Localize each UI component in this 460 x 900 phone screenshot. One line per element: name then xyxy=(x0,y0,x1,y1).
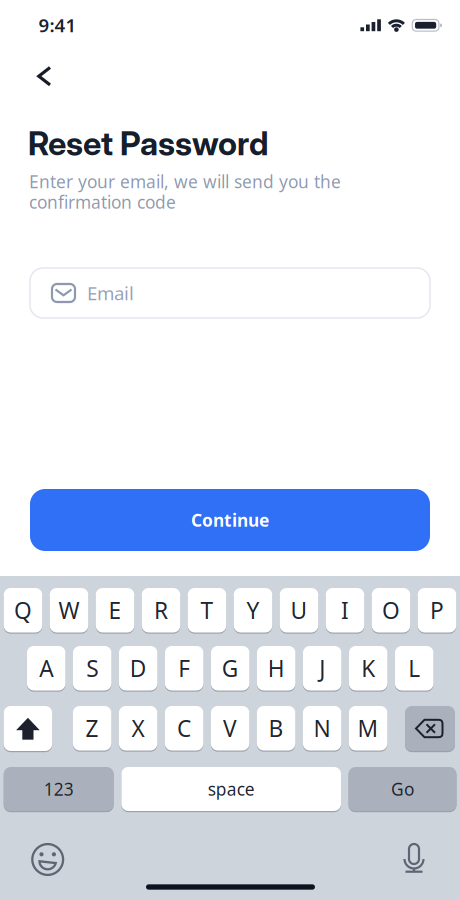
button[interactable]: X xyxy=(119,706,157,750)
staticText: W xyxy=(58,595,79,625)
staticText: T xyxy=(200,595,213,625)
staticText: B xyxy=(269,713,284,743)
button[interactable]: Y xyxy=(234,588,272,632)
staticText: Email xyxy=(87,281,134,305)
staticText: A xyxy=(39,653,53,683)
staticText: Y xyxy=(246,595,259,625)
staticText: D xyxy=(130,653,147,683)
button[interactable]: U xyxy=(280,588,318,632)
staticText: S xyxy=(86,653,98,683)
staticText: 123 xyxy=(44,777,74,800)
staticText: Enter your email, we will send you the c… xyxy=(29,170,341,213)
staticText: F xyxy=(178,653,190,683)
staticText: Go xyxy=(391,777,414,800)
staticText: H xyxy=(268,653,285,683)
button[interactable] xyxy=(29,64,61,90)
staticText: J xyxy=(319,653,325,683)
staticText: N xyxy=(314,713,331,743)
staticText: Reset Password xyxy=(28,123,269,163)
button[interactable]: D xyxy=(119,646,157,690)
button[interactable]: M xyxy=(349,706,387,750)
button[interactable]: K xyxy=(349,646,387,690)
button[interactable]: I xyxy=(326,588,364,632)
button[interactable]: Q xyxy=(4,588,42,632)
button[interactable]: 123 xyxy=(4,767,114,811)
staticText: Q xyxy=(14,595,32,625)
button[interactable]: W xyxy=(50,588,88,632)
button[interactable]: R xyxy=(142,588,180,632)
staticText: U xyxy=(290,595,307,625)
staticText: space xyxy=(208,777,255,800)
button[interactable]: J xyxy=(303,646,341,690)
staticText: R xyxy=(154,595,168,625)
button[interactable]: H xyxy=(257,646,295,690)
button[interactable] xyxy=(405,706,455,751)
button[interactable]: T xyxy=(188,588,226,632)
staticText: C xyxy=(177,713,191,743)
button[interactable] xyxy=(4,706,52,751)
staticText: M xyxy=(358,713,379,743)
button[interactable]: S xyxy=(73,646,111,690)
button[interactable]: L xyxy=(395,646,433,690)
button[interactable] xyxy=(31,842,65,876)
staticText: K xyxy=(361,653,375,683)
button[interactable]: A xyxy=(27,646,65,690)
button[interactable]: space xyxy=(121,767,341,811)
button[interactable]: Go xyxy=(348,767,456,811)
staticText: Z xyxy=(86,713,99,743)
staticText: X xyxy=(132,713,145,743)
button[interactable]: B xyxy=(257,706,295,750)
staticText: 9:41 xyxy=(38,13,76,37)
button[interactable] xyxy=(399,843,429,873)
button[interactable]: C xyxy=(165,706,203,750)
button[interactable]: V xyxy=(211,706,249,750)
button[interactable]: Continue xyxy=(30,489,430,551)
button[interactable]: E xyxy=(96,588,134,632)
button[interactable]: P xyxy=(418,588,456,632)
staticText: I xyxy=(341,595,349,625)
staticText: O xyxy=(382,595,400,625)
button[interactable]: Email xyxy=(30,268,430,318)
staticText: L xyxy=(408,653,420,683)
button[interactable]: F xyxy=(165,646,203,690)
button[interactable]: G xyxy=(211,646,249,690)
staticText: P xyxy=(430,595,444,625)
staticText: Continue xyxy=(191,508,269,531)
button[interactable]: Z xyxy=(73,706,111,750)
button[interactable]: N xyxy=(303,706,341,750)
staticText: G xyxy=(222,653,239,683)
staticText: V xyxy=(223,713,237,743)
staticText: E xyxy=(108,595,121,625)
button[interactable]: O xyxy=(372,588,410,632)
